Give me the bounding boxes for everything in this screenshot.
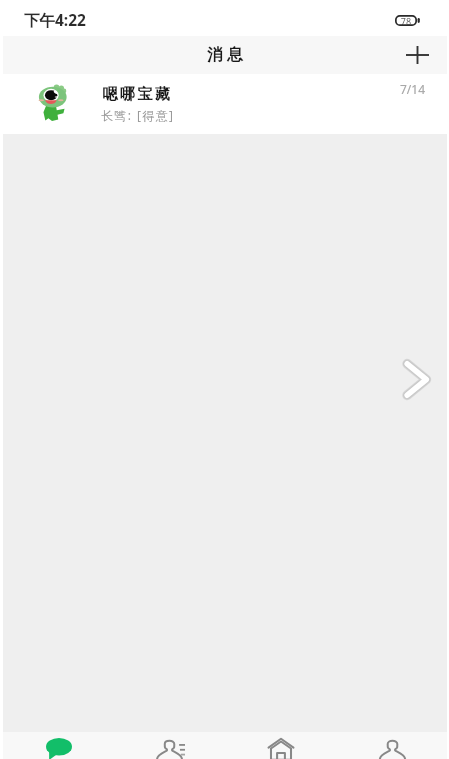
staticText: 78 bbox=[395, 15, 417, 27]
staticText: 嗯哪宝藏 bbox=[101, 85, 171, 104]
button[interactable]: Expand panel bbox=[399, 355, 435, 404]
staticText: 长骘: [得意] bbox=[101, 107, 175, 123]
button[interactable]: Add bbox=[397, 36, 437, 74]
staticText: 7/14 bbox=[400, 81, 426, 97]
staticText: 下午4:22 bbox=[24, 9, 86, 30]
staticText: 消息 bbox=[205, 45, 245, 65]
button[interactable]: Chats bbox=[0, 732, 113, 759]
button[interactable]: Discover bbox=[225, 732, 337, 759]
button[interactable]: Me bbox=[337, 732, 449, 759]
button[interactable]: Contacts bbox=[113, 732, 225, 759]
button[interactable]: 嗯哪宝藏 bbox=[0, 74, 449, 134]
